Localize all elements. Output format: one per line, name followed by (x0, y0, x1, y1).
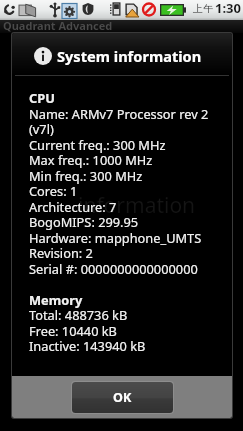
staticText: Memory (29, 294, 83, 308)
staticText: Cores: 1 (29, 185, 78, 199)
staticText: Serial #: 0000000000000000 (29, 263, 198, 277)
staticText: OK (113, 391, 132, 405)
staticText: Min freq.: 300 MHz (29, 170, 143, 184)
staticText: Inactive: 143940 kB (29, 340, 146, 354)
staticText: Current freq.: 300 MHz (29, 139, 166, 153)
staticText: CPU (29, 92, 55, 106)
button[interactable]: OK (72, 382, 173, 413)
other: Information (34, 47, 52, 65)
staticText: Total: 488736 kB (29, 309, 128, 323)
staticText: 上午 (193, 2, 213, 16)
staticText: Max freq.: 1000 MHz (29, 154, 153, 168)
staticText: 1:30 (215, 2, 241, 16)
staticText: Revision: 2 (29, 247, 93, 261)
staticText: Name: ARMv7 Processor rev 2 (29, 108, 209, 122)
staticText: (v7l) (29, 123, 54, 137)
button[interactable]: Information (12, 33, 232, 75)
staticText: System information (57, 46, 202, 66)
staticText: Free: 10440 kB (29, 325, 117, 339)
staticText: BogoMIPS: 299.95 (29, 216, 139, 230)
staticText: information (78, 191, 196, 220)
staticText: Architecture: 7 (29, 201, 117, 215)
staticText: Hardware: mapphone_UMTS (29, 232, 202, 246)
staticText: Quadrant Advanced (3, 19, 113, 32)
